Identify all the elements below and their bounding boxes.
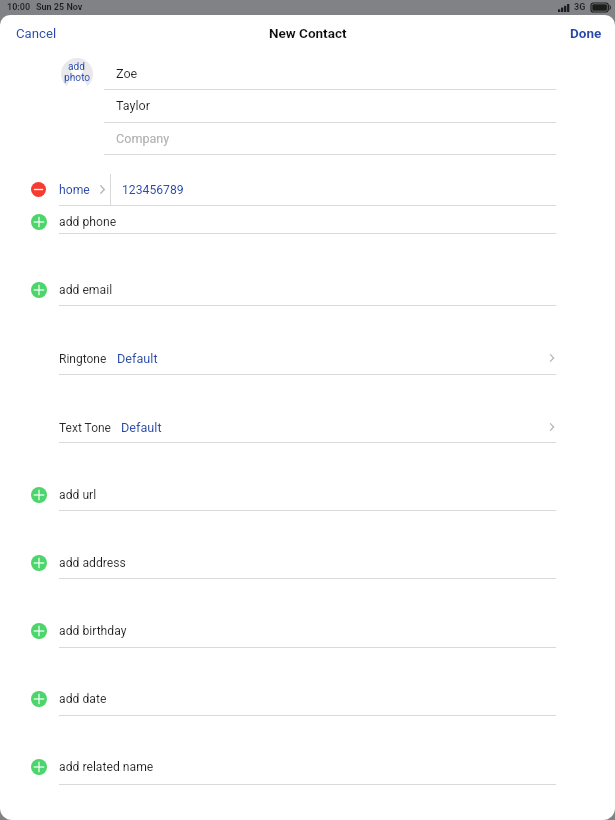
staticText: home (59, 183, 90, 197)
button[interactable]: Text Tone (24, 413, 556, 441)
button[interactable]: add date (24, 685, 556, 713)
button[interactable]: Taylor (104, 91, 556, 119)
staticText: 10:00 (7, 2, 31, 13)
staticText: add date (59, 692, 107, 706)
staticText: Cancel (16, 26, 57, 41)
button[interactable]: Cancel (6, 20, 67, 46)
button[interactable]: Done (557, 21, 615, 45)
staticText: photo (64, 72, 91, 84)
staticText: add email (59, 283, 113, 297)
staticText: add related name (59, 760, 154, 774)
staticText: Text Tone (59, 421, 111, 435)
button[interactable]: add url (24, 481, 556, 509)
staticText: Ringtone (59, 352, 107, 366)
button[interactable]: Ringtone (24, 344, 556, 372)
button[interactable]: add photo (61, 58, 93, 90)
staticText: 3G (574, 2, 586, 13)
staticText: add phone (59, 215, 117, 229)
button[interactable]: add phone (24, 208, 556, 236)
staticText: Done (570, 25, 602, 41)
button[interactable]: add related name (24, 753, 556, 781)
staticText: add birthday (59, 624, 127, 638)
staticText: Zoe (116, 66, 138, 81)
button[interactable]: Company (104, 124, 556, 152)
staticText: New Contact (269, 25, 347, 41)
staticText: add (68, 61, 86, 73)
staticText: add address (59, 556, 126, 570)
staticText: Default (121, 420, 162, 435)
button[interactable]: Zoe (104, 59, 556, 87)
button[interactable]: add birthday (24, 617, 556, 645)
staticText: Company (116, 131, 170, 146)
staticText: Taylor (116, 98, 151, 113)
staticText: Default (117, 351, 158, 366)
button[interactable]: add email (24, 276, 556, 304)
button[interactable] (24, 175, 556, 203)
staticText: 123456789 (122, 183, 184, 197)
button[interactable]: add address (24, 549, 556, 577)
staticText: Sun 25 Nov (36, 2, 83, 13)
staticText: add url (59, 488, 97, 502)
